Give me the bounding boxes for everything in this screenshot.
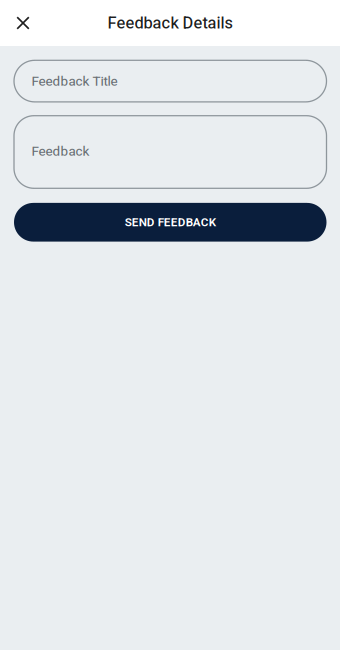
staticText: SEND FEEDBACK (125, 215, 216, 229)
button[interactable]: Feedback Title (14, 60, 326, 102)
button[interactable]: SEND FEEDBACK (14, 203, 326, 242)
button[interactable]: Feedback (14, 116, 326, 188)
staticText: Feedback Title (32, 73, 118, 89)
staticText: Feedback (32, 143, 90, 159)
staticText: Feedback Details (107, 13, 232, 33)
button[interactable]: Close (0, 0, 46, 46)
